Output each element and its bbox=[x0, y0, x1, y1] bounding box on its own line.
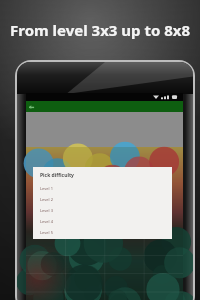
button[interactable]: Level 5 bbox=[40, 227, 172, 238]
button[interactable]: Level 3 bbox=[40, 205, 172, 216]
button[interactable]: App bar bbox=[26, 101, 183, 112]
staticText: Level 1 bbox=[40, 186, 53, 191]
button[interactable]: Level 1 bbox=[40, 183, 172, 194]
staticText: Level 2 bbox=[40, 197, 53, 202]
staticText: Level 5 bbox=[40, 230, 53, 235]
staticText: Level 4 bbox=[40, 219, 53, 224]
staticText: Pick difficulty bbox=[40, 172, 74, 179]
staticText: From level 3x3 up to 8x8 bbox=[10, 20, 191, 40]
staticText: Level 3 bbox=[40, 208, 53, 213]
button[interactable]: Level 4 bbox=[40, 216, 172, 227]
button[interactable]: Level 2 bbox=[40, 194, 172, 205]
